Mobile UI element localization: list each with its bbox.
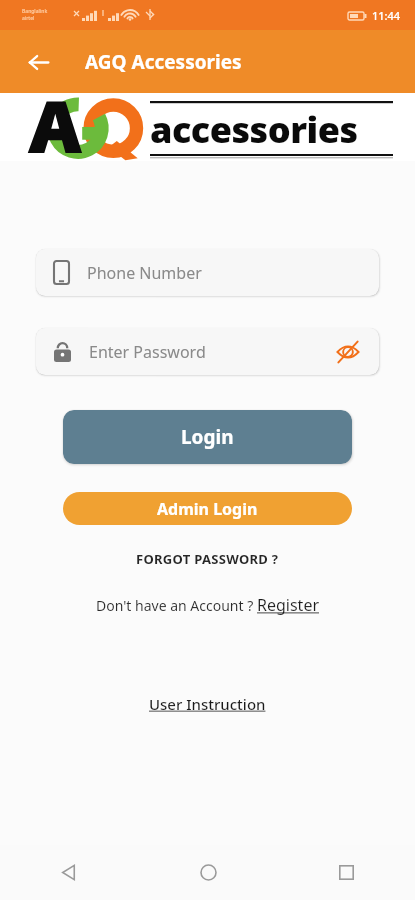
staticText: 11:44 [372, 8, 401, 23]
staticText: accessories [150, 105, 358, 154]
button[interactable]: Phone Number [36, 249, 379, 296]
staticText: Banglalink [22, 8, 48, 15]
button[interactable]: Back [0, 845, 139, 900]
button[interactable]: Admin Login [63, 492, 352, 525]
staticText: airtel [22, 15, 35, 22]
button[interactable]: FORGOT PASSWORD ? [128, 547, 287, 571]
staticText: Register [257, 594, 320, 616]
button[interactable]: Login [63, 410, 352, 464]
staticText: Phone Number [87, 262, 202, 284]
staticText: AGQ Accessories [85, 49, 242, 75]
staticText: User Instruction [149, 694, 266, 714]
staticText: Enter Password [89, 341, 206, 363]
button[interactable]: Show password [331, 335, 365, 369]
staticText: FORGOT PASSWORD ? [136, 550, 279, 568]
button[interactable]: Register [257, 594, 320, 616]
button[interactable]: Home [139, 845, 277, 900]
button[interactable]: Back [16, 40, 60, 84]
staticText: Admin Login [157, 498, 258, 520]
staticText: Login [181, 424, 234, 450]
staticText: Don't have an Account ? [96, 596, 257, 615]
button[interactable]: Enter Password [36, 328, 379, 375]
button[interactable]: Recent apps [277, 845, 415, 900]
button[interactable]: User Instruction [143, 692, 272, 716]
